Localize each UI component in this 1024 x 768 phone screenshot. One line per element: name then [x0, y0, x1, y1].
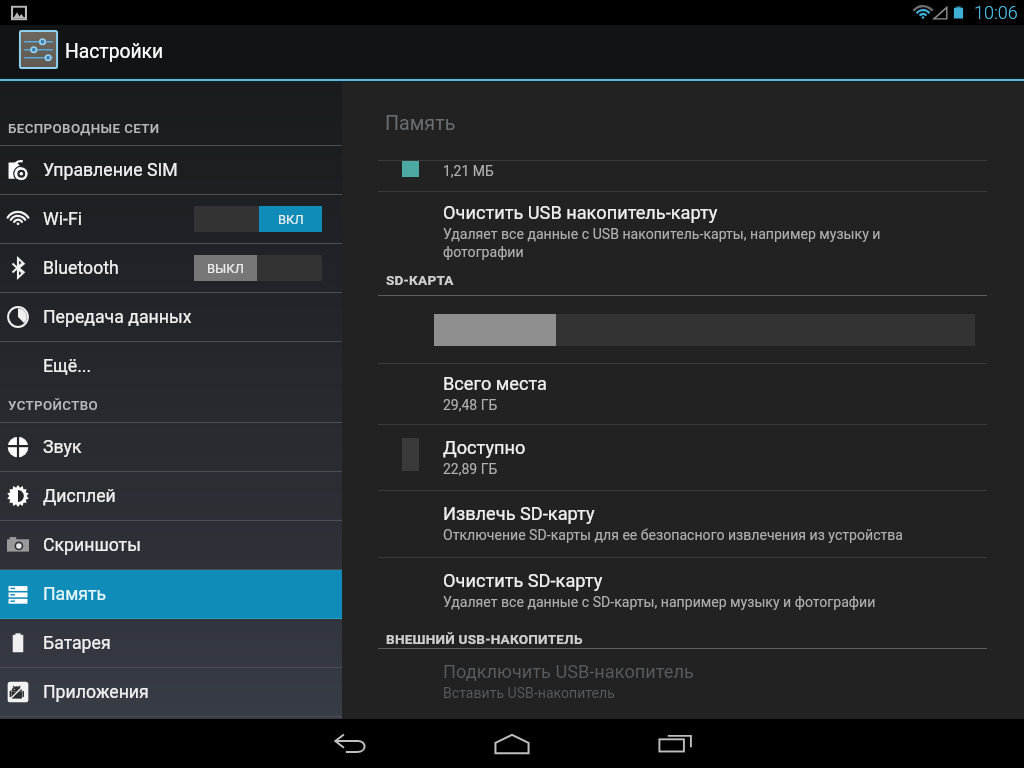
button[interactable]: Ещё...: [0, 342, 342, 391]
button[interactable]: ВЫКЛ: [194, 255, 322, 281]
staticText: ВЫКЛ: [207, 261, 244, 276]
staticText: Wi-Fi: [43, 209, 82, 230]
staticText: Память: [385, 112, 456, 135]
staticText: УСТРОЙСТВО: [8, 398, 99, 414]
button[interactable]: Подключить USB-накопитель: [342, 649, 1024, 719]
button[interactable]: Управление SIM: [0, 146, 342, 194]
staticText: 10:06: [974, 2, 1018, 23]
staticText: Память: [43, 584, 107, 605]
button[interactable]: Доступно: [342, 425, 1024, 490]
button[interactable]: Память: [0, 570, 342, 618]
staticText: Подключить USB-накопитель: [443, 661, 694, 682]
button[interactable]: Извлечь SD-карту: [342, 491, 1024, 557]
button[interactable]: ВКЛ: [194, 206, 322, 232]
button[interactable]: Wi-Fi: [0, 195, 342, 243]
button[interactable]: Recent apps: [615, 719, 735, 768]
button[interactable]: Батарея: [0, 619, 342, 667]
staticText: 1,21 МБ: [443, 163, 494, 179]
staticText: Приложения: [43, 682, 149, 703]
staticText: Звук: [43, 437, 82, 458]
button[interactable]: Дисплей: [0, 472, 342, 520]
staticText: Доступно: [443, 437, 526, 458]
staticText: 29,48 ГБ: [443, 397, 498, 413]
button[interactable]: Скриншоты: [0, 521, 342, 569]
staticText: Удаляет все данные с USB накопитель-карт…: [443, 226, 881, 261]
button[interactable]: Звук: [0, 423, 342, 471]
staticText: Извлечь SD-карту: [443, 503, 595, 524]
staticText: 22,89 ГБ: [443, 461, 498, 477]
staticText: Удаляет все данные с SD-карты, например …: [443, 594, 876, 611]
staticText: Bluetooth: [43, 258, 119, 279]
button[interactable]: Back: [290, 719, 410, 768]
staticText: Очистить SD-карту: [443, 570, 603, 591]
button[interactable]: Очистить USB накопитель-карту: [342, 192, 1024, 263]
staticText: Скриншоты: [43, 535, 141, 556]
button[interactable]: Home: [452, 719, 572, 768]
button[interactable]: Приложения: [0, 668, 342, 716]
staticText: Отключение SD-карты для ее безопасного и…: [443, 527, 904, 544]
staticText: Передача данных: [43, 307, 192, 328]
staticText: ВКЛ: [278, 212, 304, 227]
staticText: Вставить USB-накопитель: [443, 685, 615, 702]
button[interactable]: Bluetooth: [0, 244, 342, 292]
staticText: Настройки: [65, 40, 164, 63]
staticText: Батарея: [43, 633, 111, 654]
button[interactable]: Очистить SD-карту: [342, 558, 1024, 615]
staticText: SD-КАРТА: [386, 272, 454, 288]
staticText: Дисплей: [43, 486, 116, 507]
staticText: БЕСПРОВОДНЫЕ СЕТИ: [8, 121, 160, 137]
staticText: Очистить USB накопитель-карту: [443, 202, 718, 223]
button[interactable]: Всего места: [342, 364, 1024, 424]
staticText: ВНЕШНИЙ USB-НАКОПИТЕЛЬ: [386, 631, 583, 647]
staticText: Всего места: [443, 373, 547, 394]
staticText: Управление SIM: [43, 160, 178, 181]
staticText: Ещё...: [43, 356, 92, 377]
button[interactable]: Передача данных: [0, 293, 342, 341]
